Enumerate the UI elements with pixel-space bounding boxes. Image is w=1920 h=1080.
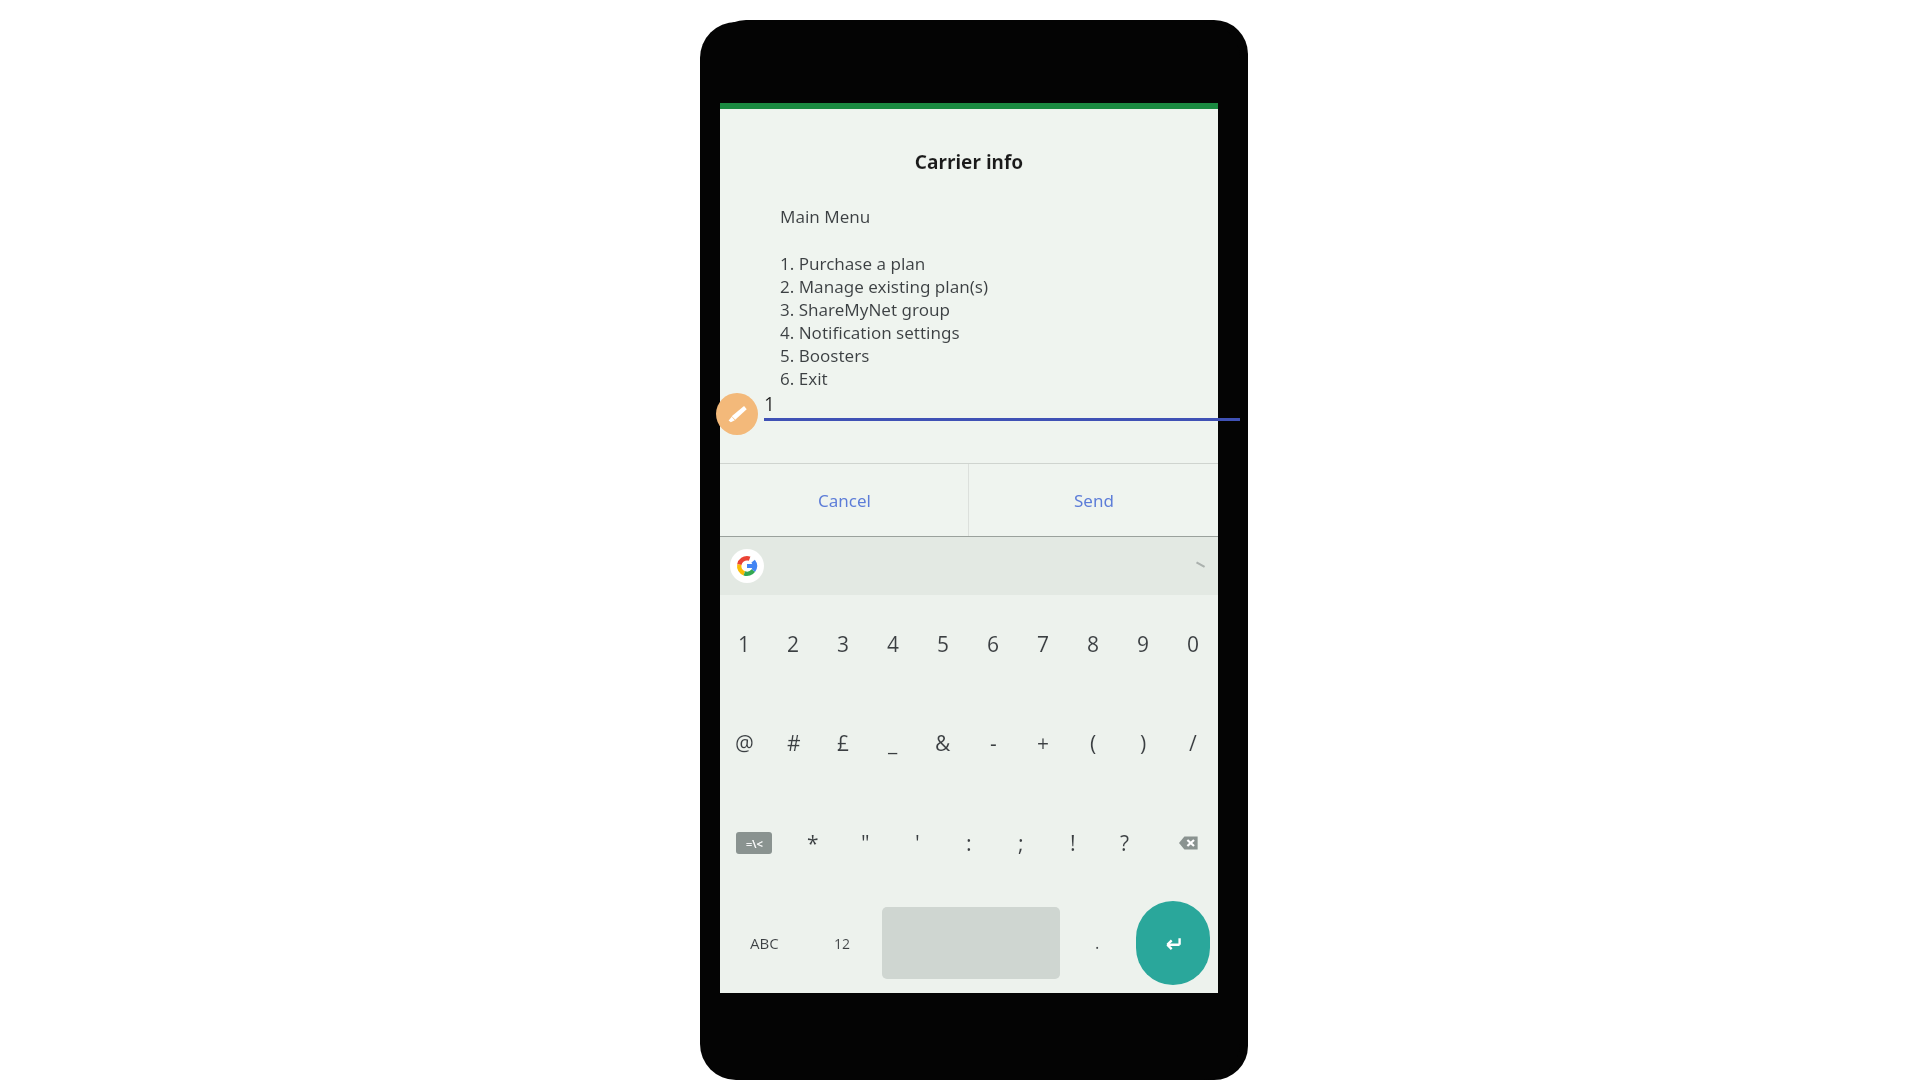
staticText: 6. Exit <box>780 367 828 390</box>
button[interactable]: 1 <box>720 595 769 694</box>
button[interactable]: ( <box>1068 694 1118 793</box>
staticText: @ <box>735 729 754 758</box>
staticText: 5 <box>937 630 950 659</box>
staticText: * <box>807 829 819 858</box>
staticText: ! <box>1070 829 1076 858</box>
button[interactable]: & <box>918 694 968 793</box>
staticText: 8 <box>1087 630 1100 659</box>
staticText: 4 <box>887 630 900 659</box>
button[interactable]: 2 <box>769 595 818 694</box>
button[interactable]: Cancel <box>720 464 968 536</box>
button[interactable]: ; <box>995 793 1047 893</box>
staticText: £ <box>837 729 850 758</box>
button[interactable]: 7 <box>1018 595 1068 694</box>
staticText: Carrier info <box>720 149 1218 175</box>
staticText: 3 <box>837 630 850 659</box>
button[interactable]: 8 <box>1068 595 1118 694</box>
button[interactable]: ABC <box>720 893 809 993</box>
staticText: - <box>990 729 997 758</box>
button[interactable]: ) <box>1118 694 1168 793</box>
button[interactable]: Backspace <box>1151 793 1218 893</box>
staticText: 12 <box>834 934 851 953</box>
button[interactable]: Google <box>730 549 764 583</box>
staticText: =\< <box>746 836 763 851</box>
staticText: 9 <box>1137 630 1150 659</box>
staticText: / <box>1189 729 1197 758</box>
button[interactable]: ? <box>1099 793 1151 893</box>
button[interactable]: Send <box>969 464 1218 536</box>
staticText: 2 <box>787 630 800 659</box>
button[interactable]: 3 <box>818 595 868 694</box>
staticText: ABC <box>750 933 779 953</box>
staticText: 1 <box>738 630 751 659</box>
button[interactable]: Edit with brush <box>716 393 758 435</box>
button[interactable]: 9 <box>1118 595 1168 694</box>
button[interactable]: Enter <box>1136 901 1210 985</box>
button[interactable]: / <box>1168 694 1218 793</box>
staticText: 6 <box>987 630 1000 659</box>
button[interactable]: # <box>769 694 818 793</box>
staticText: : <box>966 829 972 858</box>
staticText: . <box>1095 932 1100 954</box>
staticText: ' <box>915 829 920 858</box>
staticText: " <box>861 829 870 858</box>
staticText: + <box>1037 729 1050 758</box>
button[interactable]: £ <box>818 694 868 793</box>
button[interactable]: 12 <box>809 893 876 993</box>
staticText: 1 <box>764 391 775 417</box>
button[interactable]: 5 <box>918 595 968 694</box>
staticText: 5. Boosters <box>780 344 870 367</box>
staticText: # <box>787 729 801 758</box>
staticText: Send <box>1074 489 1114 512</box>
staticText: 0 <box>1187 630 1200 659</box>
button[interactable]: 4 <box>868 595 918 694</box>
button[interactable]: ' <box>891 793 943 893</box>
staticText: ) <box>1140 729 1147 758</box>
button[interactable]: 1 <box>720 371 1218 463</box>
staticText: ? <box>1120 829 1130 858</box>
button[interactable]: 0 <box>1168 595 1218 694</box>
button[interactable]: @ <box>720 694 769 793</box>
button[interactable]: More symbols <box>720 793 787 893</box>
button[interactable]: . <box>1066 893 1128 993</box>
button[interactable]: * <box>787 793 839 893</box>
button[interactable]: ! <box>1047 793 1099 893</box>
staticText: Main Menu <box>780 205 871 228</box>
button[interactable]: - <box>968 694 1018 793</box>
staticText: 3. ShareMyNet group <box>780 298 950 321</box>
button[interactable]: + <box>1018 694 1068 793</box>
button[interactable]: " <box>839 793 891 893</box>
staticText: 4. Notification settings <box>780 321 960 344</box>
button[interactable]: : <box>943 793 995 893</box>
staticText: Cancel <box>818 489 871 512</box>
staticText: 1. Purchase a plan <box>780 252 926 275</box>
staticText: _ <box>888 729 898 758</box>
staticText: ( <box>1090 729 1097 758</box>
staticText: ; <box>1018 829 1024 858</box>
staticText: & <box>935 729 951 758</box>
button[interactable]: _ <box>868 694 918 793</box>
staticText: 2. Manage existing plan(s) <box>780 275 989 298</box>
staticText: 7 <box>1037 630 1050 659</box>
button[interactable]: 6 <box>968 595 1018 694</box>
